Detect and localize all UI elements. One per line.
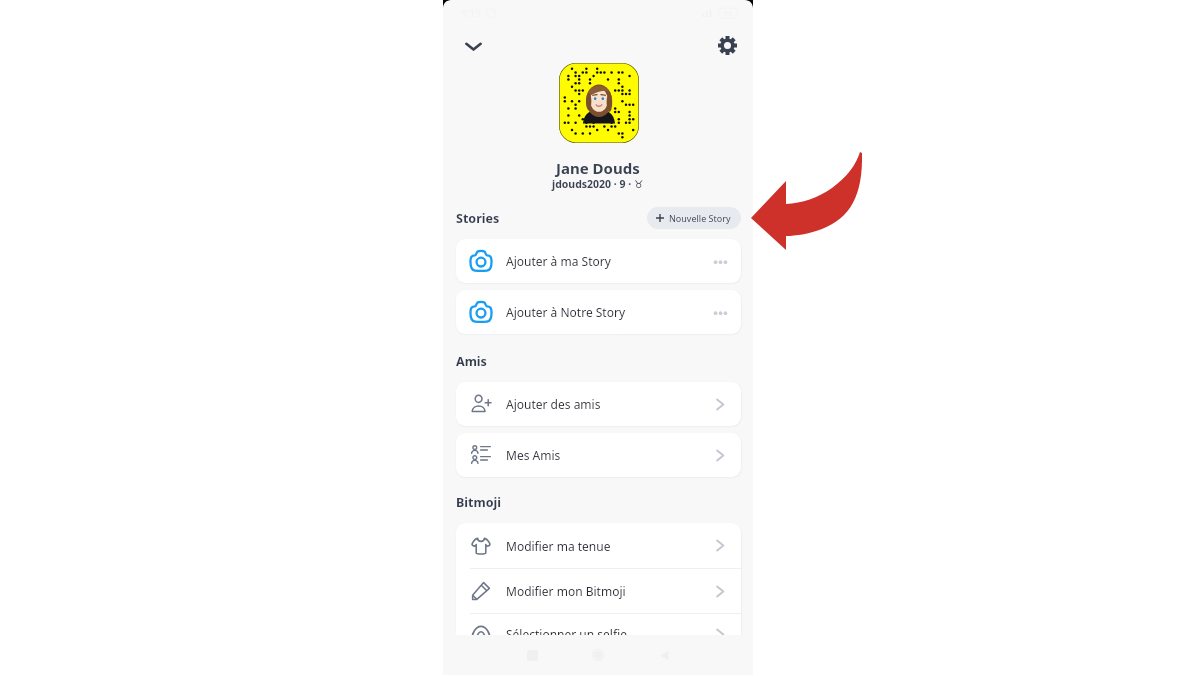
staticText: Modifier ma tenue <box>506 538 611 554</box>
staticText: Sélectionner un selfie <box>506 626 627 642</box>
staticText: Amis <box>456 353 487 370</box>
button[interactable]: Collapse profile <box>460 33 486 59</box>
staticText: Bitmoji <box>456 494 501 511</box>
button[interactable]: Snapcode <box>559 63 639 143</box>
staticText: Nouvelle Story <box>669 212 731 224</box>
button[interactable]: Settings <box>714 32 740 58</box>
button[interactable]: Mes Amis <box>456 433 741 477</box>
staticText: Stories <box>456 210 500 227</box>
staticText: Modifier mon Bitmoji <box>506 583 626 599</box>
button[interactable]: Sélectionner un selfie <box>456 614 741 654</box>
staticText: Jane Douds <box>556 158 640 178</box>
button[interactable]: Modifier mon Bitmoji <box>456 569 741 613</box>
staticText: Ajouter à ma Story <box>506 253 611 269</box>
staticText: jdouds2020 · 9 · ♉ <box>552 177 644 191</box>
button[interactable]: Recents <box>521 644 543 666</box>
button[interactable]: Nouvelle Story <box>647 207 741 229</box>
staticText: Ajouter des amis <box>506 396 601 412</box>
button[interactable]: Modifier ma tenue <box>456 523 741 568</box>
staticText: Ajouter à Notre Story <box>506 304 626 320</box>
button[interactable]: Ajouter des amis <box>456 382 741 426</box>
button[interactable]: Ajouter à ma Story <box>456 239 741 283</box>
button[interactable]: Ajouter à Notre Story <box>456 290 741 334</box>
staticText: Mes Amis <box>506 447 561 463</box>
